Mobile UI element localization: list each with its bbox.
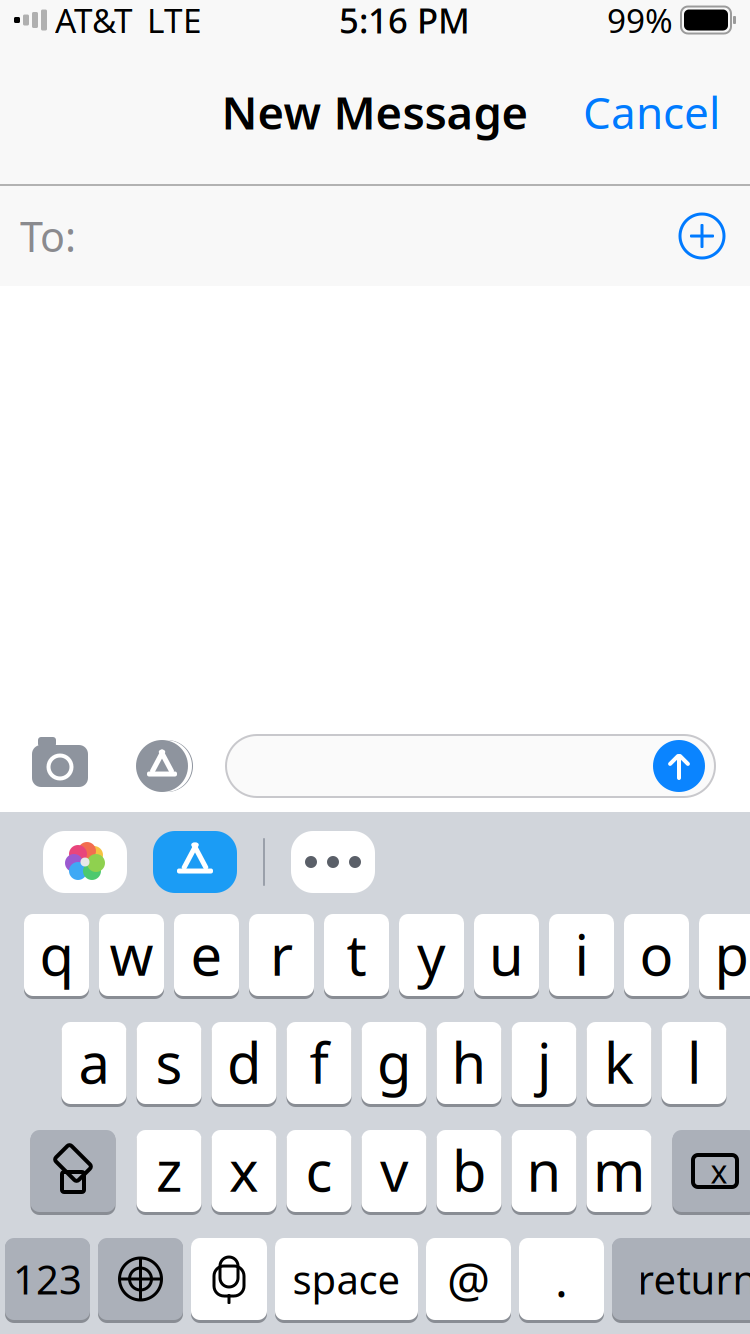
button[interactable]: More apps bbox=[291, 831, 375, 893]
button[interactable]: w bbox=[99, 912, 164, 998]
button[interactable]: b bbox=[436, 1128, 501, 1214]
staticText: f bbox=[309, 1025, 328, 1099]
button[interactable]: m bbox=[586, 1128, 651, 1214]
staticText: To: bbox=[20, 209, 76, 263]
staticText: y bbox=[417, 917, 446, 991]
button[interactable]: Add contact bbox=[670, 204, 734, 268]
staticText: o bbox=[639, 917, 673, 991]
staticText: 123 bbox=[13, 1252, 82, 1305]
staticText: l bbox=[687, 1025, 701, 1099]
button[interactable]: c bbox=[286, 1128, 351, 1214]
staticText: LTE bbox=[147, 0, 202, 42]
button[interactable]: e bbox=[174, 912, 239, 998]
button[interactable]: r bbox=[249, 912, 314, 998]
button[interactable]: Dictate bbox=[191, 1236, 267, 1322]
staticText: k bbox=[604, 1025, 634, 1099]
staticText: p bbox=[714, 917, 748, 991]
staticText: Cancel bbox=[583, 83, 720, 141]
staticText: j bbox=[537, 1025, 551, 1099]
button[interactable]: Camera bbox=[24, 738, 96, 794]
button[interactable]: d bbox=[211, 1020, 276, 1106]
button[interactable]: u bbox=[474, 912, 539, 998]
button[interactable]: Next keyboard bbox=[98, 1236, 183, 1322]
staticText: . bbox=[555, 1247, 568, 1311]
button[interactable]: x bbox=[211, 1128, 276, 1214]
staticText: r bbox=[270, 917, 293, 991]
button[interactable]: k bbox=[586, 1020, 651, 1106]
button[interactable]: Delete bbox=[672, 1128, 750, 1214]
staticText: c bbox=[305, 1133, 332, 1207]
button[interactable]: j bbox=[511, 1020, 576, 1106]
staticText: i bbox=[574, 917, 588, 991]
button[interactable]: f bbox=[286, 1020, 351, 1106]
button[interactable]: Photos bbox=[43, 831, 127, 893]
button[interactable]: Apps bbox=[126, 738, 198, 794]
button[interactable]: return bbox=[612, 1236, 750, 1322]
button[interactable]: l bbox=[661, 1020, 726, 1106]
button[interactable]: Shift bbox=[30, 1128, 115, 1214]
staticText: v bbox=[380, 1133, 408, 1207]
staticText: AT&T bbox=[55, 0, 133, 42]
staticText: 99% bbox=[607, 0, 673, 42]
staticText: g bbox=[377, 1025, 411, 1099]
staticText: t bbox=[346, 917, 366, 991]
staticText: q bbox=[39, 917, 73, 991]
staticText: z bbox=[156, 1133, 182, 1207]
button[interactable]: a bbox=[61, 1020, 126, 1106]
button[interactable]: @ bbox=[426, 1236, 511, 1322]
button[interactable]: space bbox=[275, 1236, 418, 1322]
staticText: return bbox=[637, 1252, 750, 1305]
button[interactable]: Cancel bbox=[567, 71, 736, 153]
button[interactable]: q bbox=[24, 912, 89, 998]
staticText: n bbox=[526, 1133, 561, 1207]
button[interactable]: . bbox=[519, 1236, 604, 1322]
staticText: x bbox=[229, 1133, 259, 1207]
staticText: u bbox=[489, 917, 524, 991]
button[interactable]: i bbox=[549, 912, 614, 998]
staticText: @ bbox=[447, 1247, 490, 1311]
button[interactable]: y bbox=[399, 912, 464, 998]
staticText: h bbox=[451, 1025, 486, 1099]
staticText: space bbox=[292, 1252, 400, 1305]
button[interactable]: t bbox=[324, 912, 389, 998]
button[interactable]: v bbox=[361, 1128, 426, 1214]
staticText: s bbox=[155, 1025, 182, 1099]
button[interactable]: n bbox=[511, 1128, 576, 1214]
staticText: m bbox=[593, 1133, 645, 1207]
button[interactable]: s bbox=[136, 1020, 201, 1106]
button[interactable]: h bbox=[436, 1020, 501, 1106]
button[interactable]: p bbox=[699, 912, 750, 998]
staticText: New Message bbox=[221, 82, 528, 142]
button[interactable]: App Store bbox=[153, 831, 237, 893]
staticText: e bbox=[190, 917, 222, 991]
staticText: d bbox=[227, 1025, 261, 1099]
button[interactable]: 123 bbox=[5, 1236, 90, 1322]
button[interactable]: z bbox=[136, 1128, 201, 1214]
staticText: b bbox=[452, 1133, 486, 1207]
staticText: a bbox=[78, 1025, 109, 1099]
staticText: w bbox=[109, 917, 153, 991]
button[interactable]: o bbox=[624, 912, 689, 998]
button[interactable]: Send bbox=[648, 735, 710, 797]
staticText: x bbox=[710, 1150, 727, 1192]
staticText: 5:16 PM bbox=[339, 0, 470, 43]
button[interactable]: g bbox=[361, 1020, 426, 1106]
